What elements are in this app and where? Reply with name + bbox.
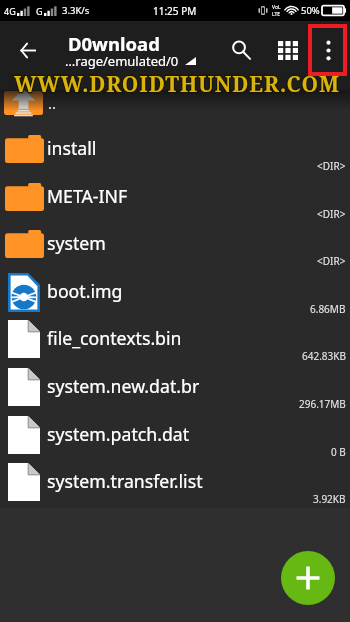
button[interactable]: system.patch.dat	[0, 411, 350, 459]
staticText: <DIR>	[317, 159, 346, 173]
button[interactable]: system	[0, 220, 350, 268]
staticText: 3.3K/s	[62, 4, 90, 17]
button[interactable]: META-INF	[0, 173, 350, 221]
staticText: LTE	[272, 11, 281, 18]
staticText: WWW.DROIDTHUNDER.COM	[2, 70, 350, 99]
button[interactable]: Add	[281, 551, 335, 605]
staticText: 0 B	[331, 445, 346, 459]
staticText: G	[36, 5, 43, 17]
staticText: <DIR>	[317, 254, 346, 268]
button[interactable]: system.transfer.list	[0, 458, 350, 506]
staticText: WWW.DROIDTHUNDER.COM	[2, 70, 350, 99]
staticText: system.patch.dat	[47, 422, 190, 446]
button[interactable]: Grid view	[268, 30, 308, 70]
staticText: 4G	[4, 5, 16, 17]
button[interactable]: boot.img	[0, 268, 350, 316]
staticText: 642.83KB	[302, 349, 346, 363]
button[interactable]: Back	[7, 30, 48, 71]
staticText: VoL	[272, 4, 281, 11]
staticText: system.transfer.list	[47, 469, 203, 493]
button[interactable]: More options	[308, 24, 347, 76]
staticText: D0wnload	[68, 31, 160, 56]
button[interactable]: system.new.dat.br	[0, 363, 350, 411]
staticText: install	[47, 136, 97, 160]
staticText: 296.17MB	[299, 397, 346, 411]
staticText: system	[47, 231, 106, 255]
button[interactable]: file_contexts.bin	[0, 315, 350, 363]
staticText: system.new.dat.br	[47, 374, 200, 398]
staticText: file_contexts.bin	[47, 326, 182, 350]
staticText: 6.86MB	[310, 302, 346, 316]
staticText: …rage/emulated/0	[65, 52, 179, 70]
staticText: 11:25 PM	[153, 4, 197, 18]
button[interactable]: ..	[0, 88, 350, 118]
button[interactable]: install	[0, 125, 350, 173]
staticText: 50%	[301, 4, 320, 17]
staticText: boot.img	[47, 279, 123, 303]
button[interactable]: Search	[221, 30, 261, 70]
staticText: META-INF	[47, 184, 128, 208]
staticText: 3.92KB	[313, 492, 346, 506]
staticText: ..	[48, 93, 57, 113]
staticText: <DIR>	[317, 207, 346, 221]
